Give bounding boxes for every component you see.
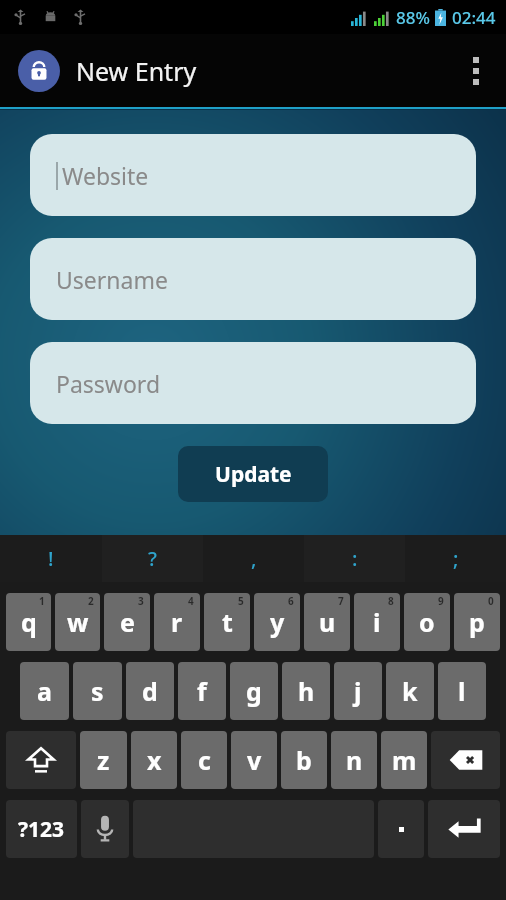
button[interactable]: d	[126, 662, 174, 720]
staticText: z	[97, 743, 110, 777]
staticText: 88%	[396, 6, 430, 29]
button[interactable]: v	[231, 731, 277, 789]
button[interactable]: p	[454, 593, 500, 651]
button[interactable]: k	[386, 662, 434, 720]
button[interactable]: o	[404, 593, 450, 651]
staticText: Website	[62, 160, 149, 191]
staticText: 0	[488, 594, 494, 608]
staticText: :	[352, 545, 358, 572]
button[interactable]: n	[331, 731, 377, 789]
staticText: l	[458, 674, 466, 708]
button[interactable]: s	[73, 662, 122, 720]
staticText: c	[198, 743, 211, 777]
staticText: m	[392, 743, 417, 777]
staticText: 9	[438, 594, 444, 608]
staticText: r	[171, 605, 183, 639]
button[interactable]: t	[204, 593, 250, 651]
staticText: ?123	[18, 815, 65, 844]
button[interactable]: Update	[178, 446, 328, 502]
button[interactable]: Website	[30, 134, 476, 216]
button[interactable]: u	[304, 593, 350, 651]
button[interactable]: Password	[30, 342, 476, 424]
staticText: q	[21, 605, 37, 639]
button[interactable]: r	[154, 593, 200, 651]
staticText: k	[402, 674, 418, 708]
button[interactable]: a	[20, 662, 69, 720]
staticText: 7	[338, 594, 344, 608]
staticText: 3	[138, 594, 144, 608]
staticText: d	[142, 674, 158, 708]
staticText: n	[346, 743, 363, 777]
staticText: 6	[288, 594, 294, 608]
staticText: 2	[88, 594, 94, 608]
staticText: g	[246, 674, 262, 708]
button[interactable]: x	[131, 731, 177, 789]
staticText: v	[247, 743, 262, 777]
staticText: t	[222, 605, 233, 639]
staticText: Password	[56, 368, 161, 399]
staticText: e	[120, 605, 135, 639]
button[interactable]: h	[282, 662, 330, 720]
staticText: s	[91, 674, 104, 708]
staticText: New Entry	[76, 54, 197, 88]
staticText: b	[296, 743, 312, 777]
button[interactable]: ?123	[6, 800, 77, 858]
staticText: ?	[148, 545, 157, 572]
staticText: ;	[453, 545, 459, 572]
staticText: o	[419, 605, 435, 639]
staticText: h	[298, 674, 315, 708]
button[interactable]: m	[381, 731, 427, 789]
staticText: Update	[215, 460, 292, 489]
staticText: j	[354, 674, 362, 708]
staticText: a	[37, 674, 52, 708]
staticText: Username	[56, 264, 168, 295]
button[interactable]: y	[254, 593, 300, 651]
staticText: !	[48, 545, 54, 572]
button[interactable]: q	[6, 593, 51, 651]
button[interactable]: Voice input	[81, 800, 129, 858]
staticText: 02:44	[452, 6, 496, 29]
button[interactable]: !	[0, 535, 102, 582]
button[interactable]: Shift	[6, 731, 76, 789]
button[interactable]: :	[304, 535, 405, 582]
staticText: ,	[251, 545, 257, 572]
button[interactable]: z	[80, 731, 127, 789]
staticText: u	[319, 605, 336, 639]
button[interactable]: ;	[405, 535, 506, 582]
button[interactable]: Username	[30, 238, 476, 320]
button[interactable]: More options	[445, 34, 506, 107]
button[interactable]: w	[55, 593, 100, 651]
button[interactable]: Backspace	[431, 731, 500, 789]
button[interactable]: ?	[102, 535, 203, 582]
staticText: x	[147, 743, 162, 777]
button[interactable]: l	[438, 662, 486, 720]
staticText: p	[469, 605, 485, 639]
button[interactable]: f	[178, 662, 226, 720]
button[interactable]: j	[334, 662, 382, 720]
staticText: f	[197, 674, 207, 708]
button[interactable]: i	[354, 593, 400, 651]
button[interactable]	[378, 800, 424, 858]
staticText: y	[270, 605, 285, 639]
staticText: 4	[188, 594, 194, 608]
button[interactable]: c	[181, 731, 227, 789]
staticText: 1	[39, 594, 45, 608]
button[interactable]: Enter	[428, 800, 500, 858]
staticText: 8	[388, 594, 394, 608]
staticText: i	[373, 605, 381, 639]
button[interactable]: e	[104, 593, 150, 651]
staticText: 5	[238, 594, 244, 608]
button[interactable]: b	[281, 731, 327, 789]
button[interactable]: g	[230, 662, 278, 720]
staticText: w	[67, 605, 89, 639]
button[interactable]: ,	[203, 535, 304, 582]
